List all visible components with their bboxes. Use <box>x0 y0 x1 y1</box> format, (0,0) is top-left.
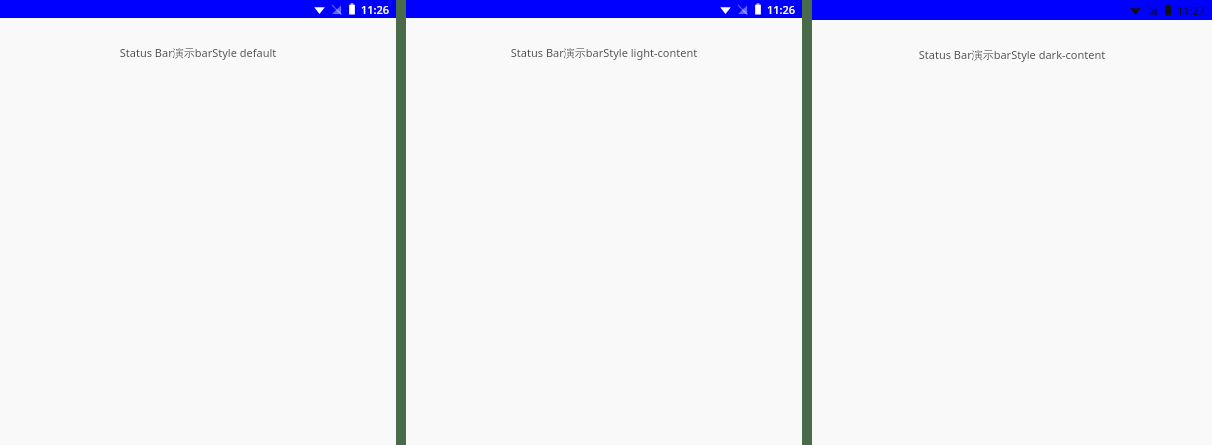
staticText: Status Bar演示barStyle light-content <box>414 45 794 60</box>
other: Battery <box>1164 4 1172 16</box>
other: Mobile signal off <box>331 4 342 15</box>
staticText: 11:26 <box>361 2 390 17</box>
other: Wi-Fi <box>720 4 731 15</box>
button[interactable]: Wi-Fi <box>406 0 802 445</box>
button[interactable]: Wi-Fi <box>0 0 396 445</box>
staticText: Status Bar演示barStyle default <box>8 45 388 60</box>
staticText: 11:26 <box>767 2 796 17</box>
other: Mobile signal off <box>737 4 748 15</box>
other: Battery <box>348 3 356 15</box>
other: Wi-Fi <box>314 4 325 15</box>
staticText: 11:27 <box>1177 3 1206 18</box>
staticText: Status Bar演示barStyle dark-content <box>820 47 1204 62</box>
other: Mobile signal off <box>1147 5 1158 16</box>
other: Wi-Fi <box>1130 5 1141 16</box>
button[interactable]: Wi-Fi <box>812 0 1212 445</box>
other: Battery <box>754 3 762 15</box>
